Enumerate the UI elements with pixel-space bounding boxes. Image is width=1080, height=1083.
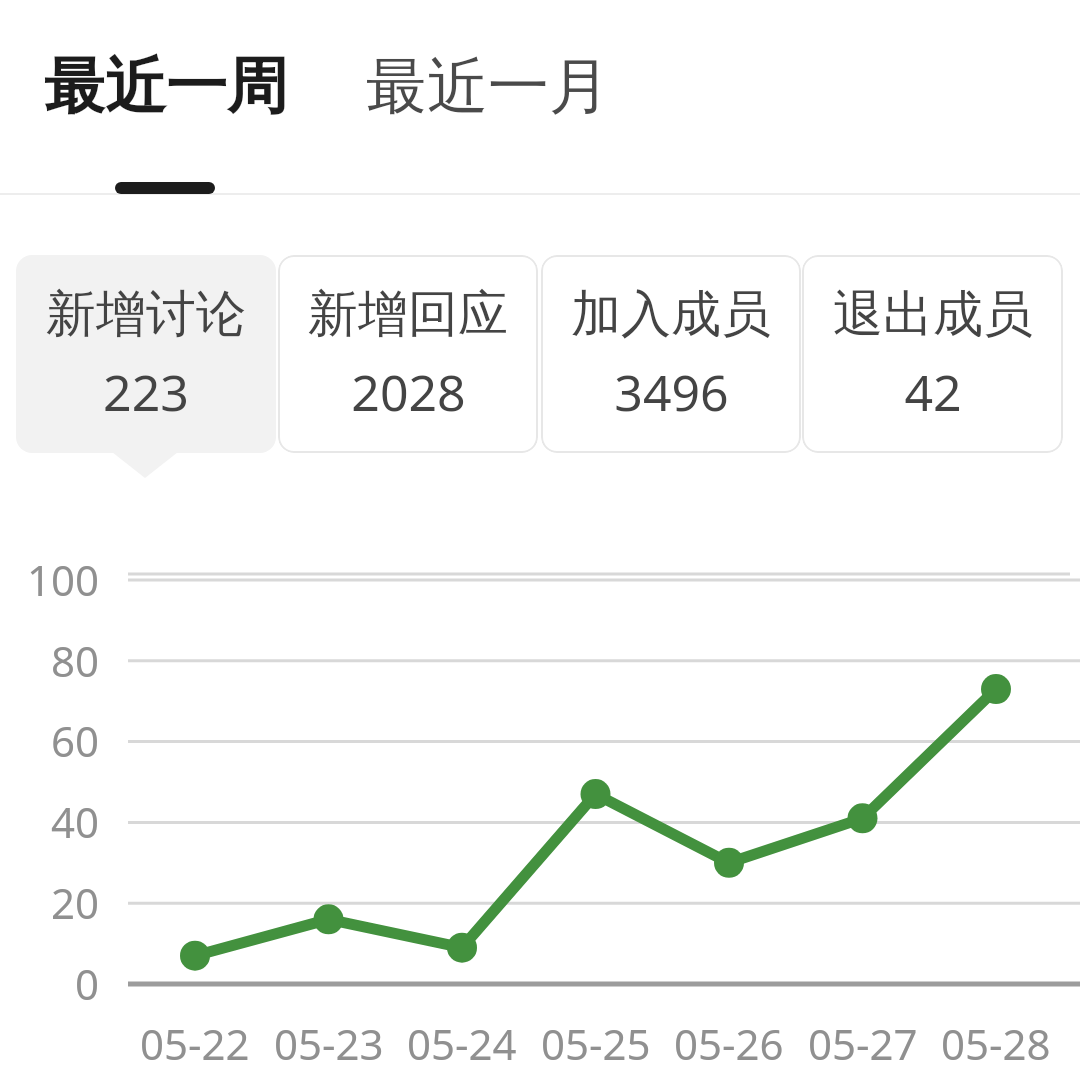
staticText: 0: [75, 955, 100, 1012]
staticText: 3496: [614, 358, 729, 426]
staticText: 20: [51, 874, 100, 931]
staticText: 05-26: [674, 1015, 784, 1072]
staticText: 100: [27, 551, 100, 608]
staticText: 60: [51, 712, 100, 769]
staticText: 05-27: [808, 1015, 918, 1072]
staticText: 退出成员: [833, 283, 1033, 346]
staticText: 40: [51, 793, 100, 850]
button[interactable]: 最近一月: [366, 48, 610, 125]
button[interactable]: 新增回应: [278, 255, 538, 453]
button[interactable]: 加入成员: [541, 255, 801, 453]
button[interactable]: 新增讨论: [16, 255, 276, 453]
staticText: 05-22: [140, 1015, 250, 1072]
staticText: 05-23: [274, 1015, 384, 1072]
staticText: 加入成员: [571, 283, 771, 346]
staticText: 05-24: [407, 1015, 517, 1072]
other: Daily new discussions line chart: [0, 553, 1080, 1083]
staticText: 新增回应: [308, 283, 508, 346]
staticText: 最近一月: [366, 48, 610, 125]
staticText: 05-25: [541, 1015, 651, 1072]
button[interactable]: 最近一周: [44, 48, 288, 125]
staticText: 05-28: [941, 1015, 1051, 1072]
staticText: 最近一周: [44, 48, 288, 125]
staticText: 80: [51, 632, 100, 689]
staticText: 新增讨论: [46, 283, 246, 346]
staticText: 223: [103, 358, 189, 426]
staticText: 2028: [351, 358, 466, 426]
button[interactable]: 退出成员: [802, 255, 1063, 453]
staticText: 42: [904, 358, 962, 426]
